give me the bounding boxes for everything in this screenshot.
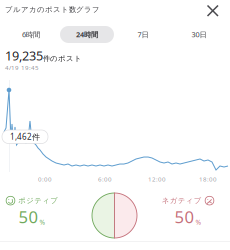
staticText: 6時間 [22, 29, 40, 39]
staticText: 7日 [137, 29, 148, 39]
staticText: 19,235 [5, 47, 43, 64]
staticText: 24時間 [76, 29, 98, 39]
staticText: 4/19 19:45 [5, 63, 39, 72]
staticText: % [39, 217, 45, 227]
staticText: 50 [174, 205, 194, 228]
button[interactable]: ポジティブ [0, 196, 68, 228]
button[interactable]: 30日 [172, 26, 226, 43]
staticText: 12:00 [148, 175, 166, 183]
staticText: 0:00 [38, 175, 52, 183]
staticText: 1,462件 [10, 131, 40, 142]
button[interactable]: 6時間 [4, 26, 58, 43]
staticText: 18:00 [199, 175, 217, 183]
button[interactable]: ネガティブ [152, 196, 224, 228]
button[interactable]: 24時間 [60, 26, 114, 43]
staticText: 件のポスト [43, 54, 82, 63]
button[interactable]: Close [201, 0, 224, 22]
staticText: % [195, 217, 201, 227]
staticText: 50 [18, 205, 38, 228]
staticText: 6:00 [98, 175, 112, 183]
staticText: 30日 [191, 29, 206, 39]
staticText: ポジティブ [18, 196, 58, 205]
staticText: ネガティブ [162, 196, 202, 205]
button[interactable]: 7日 [116, 26, 170, 43]
staticText: ブルアカのポスト数グラフ [5, 5, 100, 14]
